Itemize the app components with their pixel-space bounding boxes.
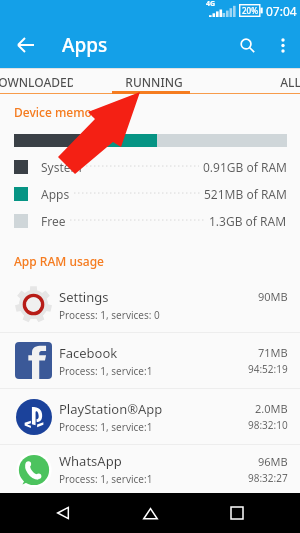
staticText: Process: 1, service:1 — [59, 420, 153, 434]
staticText: Process: 1, service:1 — [59, 472, 153, 486]
staticText: WhatsApp — [59, 452, 122, 470]
staticText: 07:04 — [266, 3, 297, 19]
button[interactable]: WhatsApp — [0, 445, 300, 493]
button[interactable]: DOWNLOADED — [0, 68, 73, 95]
button[interactable]: Back — [39, 493, 87, 533]
staticText: Settings — [59, 288, 109, 306]
staticText: 2.0MB — [255, 401, 288, 416]
staticText: Process: 1, service:1 — [59, 364, 153, 378]
staticText: Free — [41, 213, 66, 229]
staticText: App RAM usage — [14, 253, 104, 269]
staticText: 4G — [206, 0, 216, 9]
button[interactable]: Free — [0, 207, 300, 234]
staticText: Apps — [41, 186, 70, 202]
staticText: DOWNLOADED — [0, 74, 73, 90]
staticText: ALL — [280, 74, 300, 90]
staticText: Apps — [62, 32, 108, 58]
staticText: 20% — [242, 5, 258, 16]
staticText: 98:32:27 — [248, 471, 288, 485]
button[interactable]: Home — [126, 493, 174, 533]
staticText: 521MB of RAM — [204, 186, 287, 202]
staticText: 71MB — [258, 345, 288, 360]
button[interactable]: ALL — [269, 68, 300, 95]
button[interactable]: Back — [8, 27, 44, 63]
button[interactable]: Facebook — [0, 333, 300, 389]
staticText: 96MB — [258, 454, 288, 469]
button[interactable]: PlayStation®App — [0, 389, 300, 445]
button[interactable]: System — [0, 153, 300, 180]
button[interactable]: Apps — [0, 180, 300, 207]
button[interactable]: Recents — [213, 493, 261, 533]
button[interactable]: Settings — [0, 277, 300, 333]
button[interactable]: More options — [267, 29, 299, 61]
staticText: RUNNING — [125, 74, 183, 90]
staticText: 1.3GB of RAM — [209, 213, 287, 229]
button[interactable]: Search — [229, 27, 265, 63]
staticText: 0.91GB of RAM — [203, 159, 287, 175]
staticText: PlayStation®App — [59, 400, 163, 418]
staticText: Device memory — [14, 104, 104, 120]
staticText: System — [41, 159, 82, 175]
staticText: 98:32:10 — [248, 418, 288, 432]
staticText: 90MB — [258, 289, 288, 304]
button[interactable]: RUNNING — [115, 68, 193, 95]
staticText: Facebook — [59, 344, 118, 362]
staticText: 94:52:19 — [248, 362, 288, 376]
staticText: Process: 1, services: 0 — [59, 308, 160, 322]
